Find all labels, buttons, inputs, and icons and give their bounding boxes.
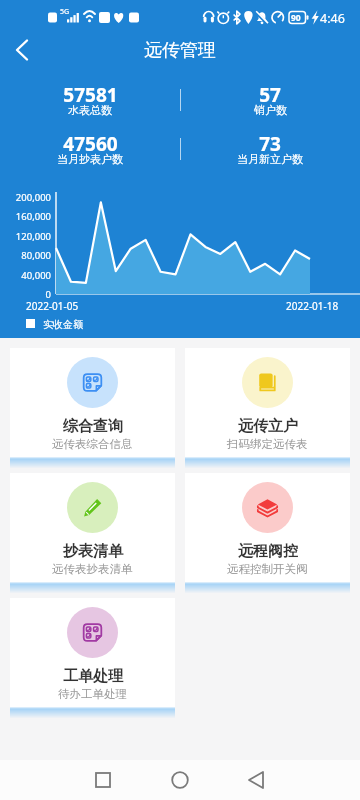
button[interactable]: Back <box>0 28 44 72</box>
staticText: 47560 <box>63 131 118 157</box>
button[interactable]: Recent apps <box>80 760 126 800</box>
staticText: 当月抄表户数 <box>57 152 123 166</box>
staticText: 扫码绑定远传表 <box>227 437 308 451</box>
staticText: 远传立户 <box>238 417 298 436</box>
staticText: 57 <box>259 82 281 108</box>
button[interactable]: 综合查询 <box>10 348 175 468</box>
staticText: 80,000 <box>21 249 51 262</box>
staticText: 实收金额 <box>43 318 83 331</box>
staticText: 工单处理 <box>63 667 123 686</box>
staticText: 0 <box>45 288 51 301</box>
staticText: 2022-01-18 <box>286 299 339 313</box>
staticText: 远程阀控 <box>238 542 298 561</box>
staticText: 远传表综合信息 <box>52 437 133 451</box>
staticText: 待办工单处理 <box>58 687 127 701</box>
staticText: 4:46 <box>320 10 345 27</box>
staticText: 抄表清单 <box>63 542 123 561</box>
staticText: 当月新立户数 <box>237 152 303 166</box>
staticText: 160,000 <box>15 210 51 223</box>
staticText: 5G <box>60 7 70 17</box>
staticText: 120,000 <box>15 230 51 243</box>
staticText: 57581 <box>63 82 118 108</box>
staticText: 200,000 <box>15 191 51 204</box>
button[interactable]: 抄表清单 <box>10 473 175 593</box>
button[interactable]: 远程阀控 <box>185 473 350 593</box>
staticText: 40,000 <box>21 269 51 282</box>
staticText: 水表总数 <box>68 103 112 117</box>
staticText: 73 <box>259 131 281 157</box>
button[interactable]: 工单处理 <box>10 598 175 718</box>
staticText: 综合查询 <box>63 417 123 436</box>
staticText: 2022-01-05 <box>26 299 79 313</box>
button[interactable]: 远传立户 <box>185 348 350 468</box>
staticText: 90 <box>291 12 301 24</box>
staticText: 远程控制开关阀 <box>227 562 308 576</box>
staticText: 远传表抄表清单 <box>52 562 133 576</box>
button[interactable]: Back <box>234 760 280 800</box>
staticText: 销户数 <box>254 103 287 117</box>
staticText: 远传管理 <box>144 39 216 62</box>
button[interactable]: Home <box>157 760 203 800</box>
